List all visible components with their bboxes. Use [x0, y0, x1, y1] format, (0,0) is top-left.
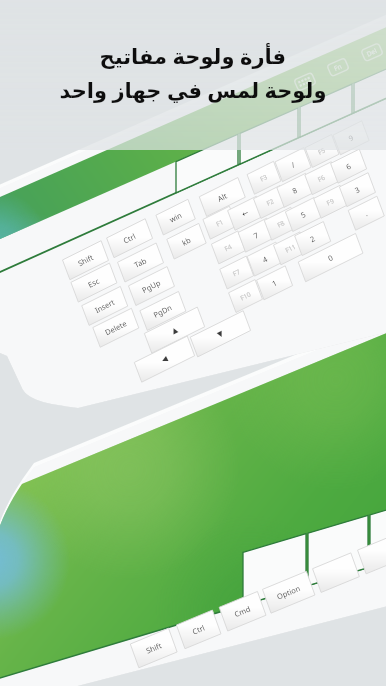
- button[interactable]: [0, 0, 386, 686]
